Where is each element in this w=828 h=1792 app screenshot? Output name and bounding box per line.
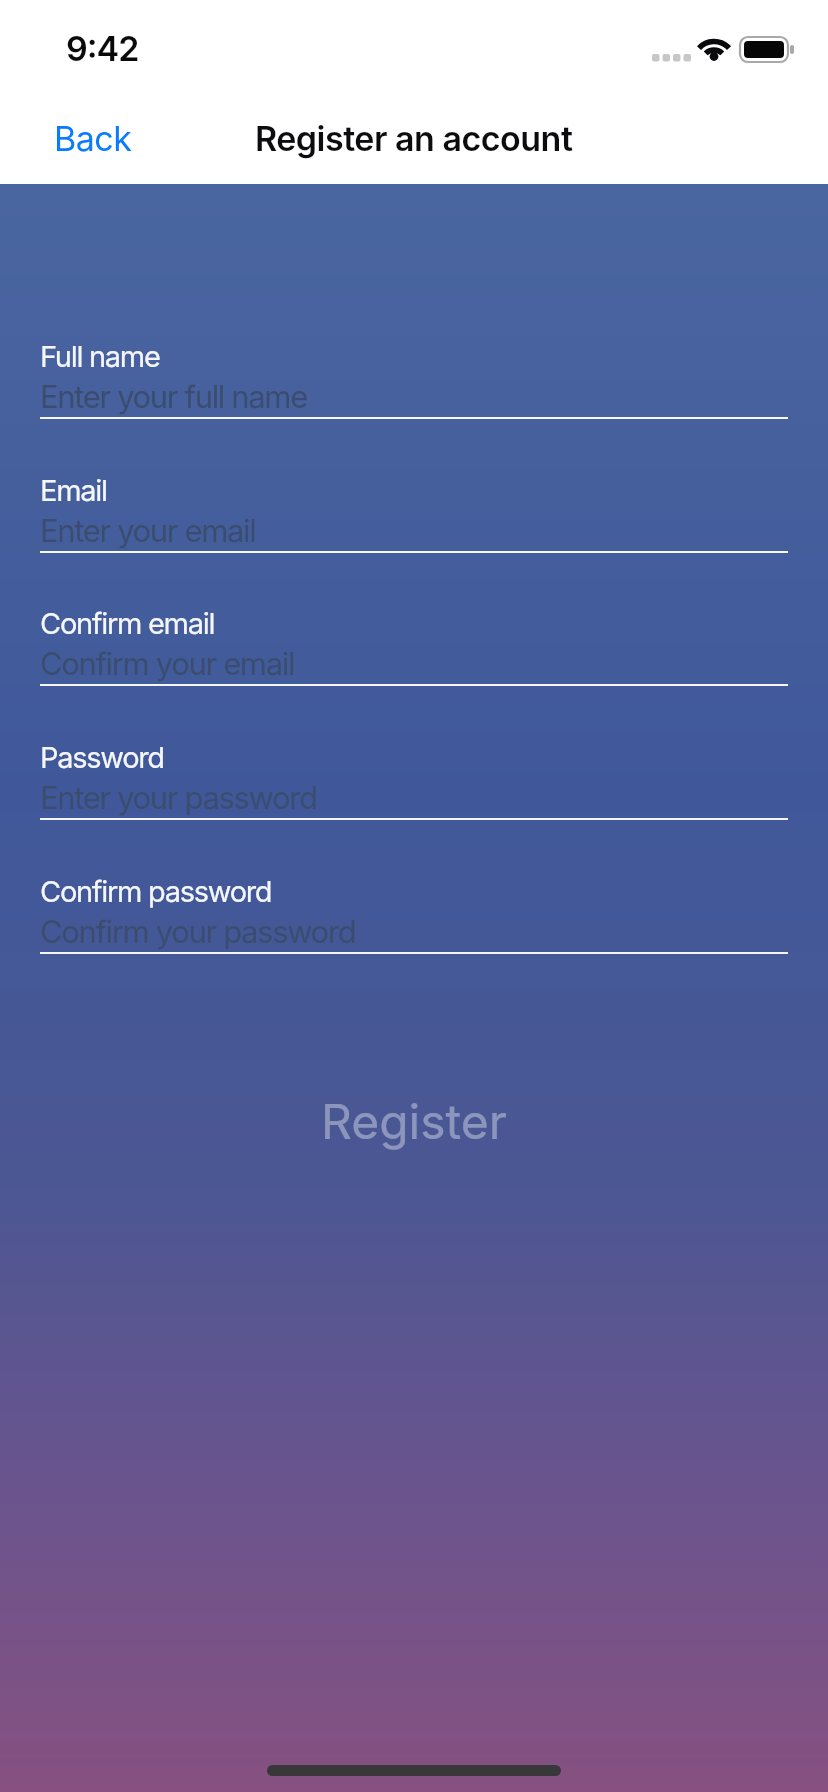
button[interactable]: Enter your password <box>40 779 788 823</box>
staticText: Enter your password <box>40 779 317 817</box>
staticText: Password <box>40 740 164 775</box>
staticText: Register an account <box>255 118 573 159</box>
staticText: Confirm your password <box>40 913 356 951</box>
button[interactable]: Enter your email <box>40 512 788 556</box>
button[interactable]: Confirm your email <box>40 645 788 689</box>
staticText: Confirm email <box>40 606 215 641</box>
staticText: Confirm your email <box>40 645 295 683</box>
staticText: Full name <box>40 339 160 374</box>
staticText: Email <box>40 473 107 508</box>
staticText: Enter your email <box>40 512 256 550</box>
staticText: Enter your full name <box>40 378 307 416</box>
staticText: 9:42 <box>66 28 139 69</box>
button[interactable]: Enter your full name <box>40 378 788 422</box>
button[interactable]: Register <box>0 1092 828 1172</box>
staticText: Back <box>54 118 132 159</box>
button[interactable]: Back <box>42 110 120 151</box>
button[interactable]: Confirm your password <box>40 913 788 957</box>
staticText: Register <box>321 1092 507 1150</box>
staticText: Confirm password <box>40 874 272 909</box>
